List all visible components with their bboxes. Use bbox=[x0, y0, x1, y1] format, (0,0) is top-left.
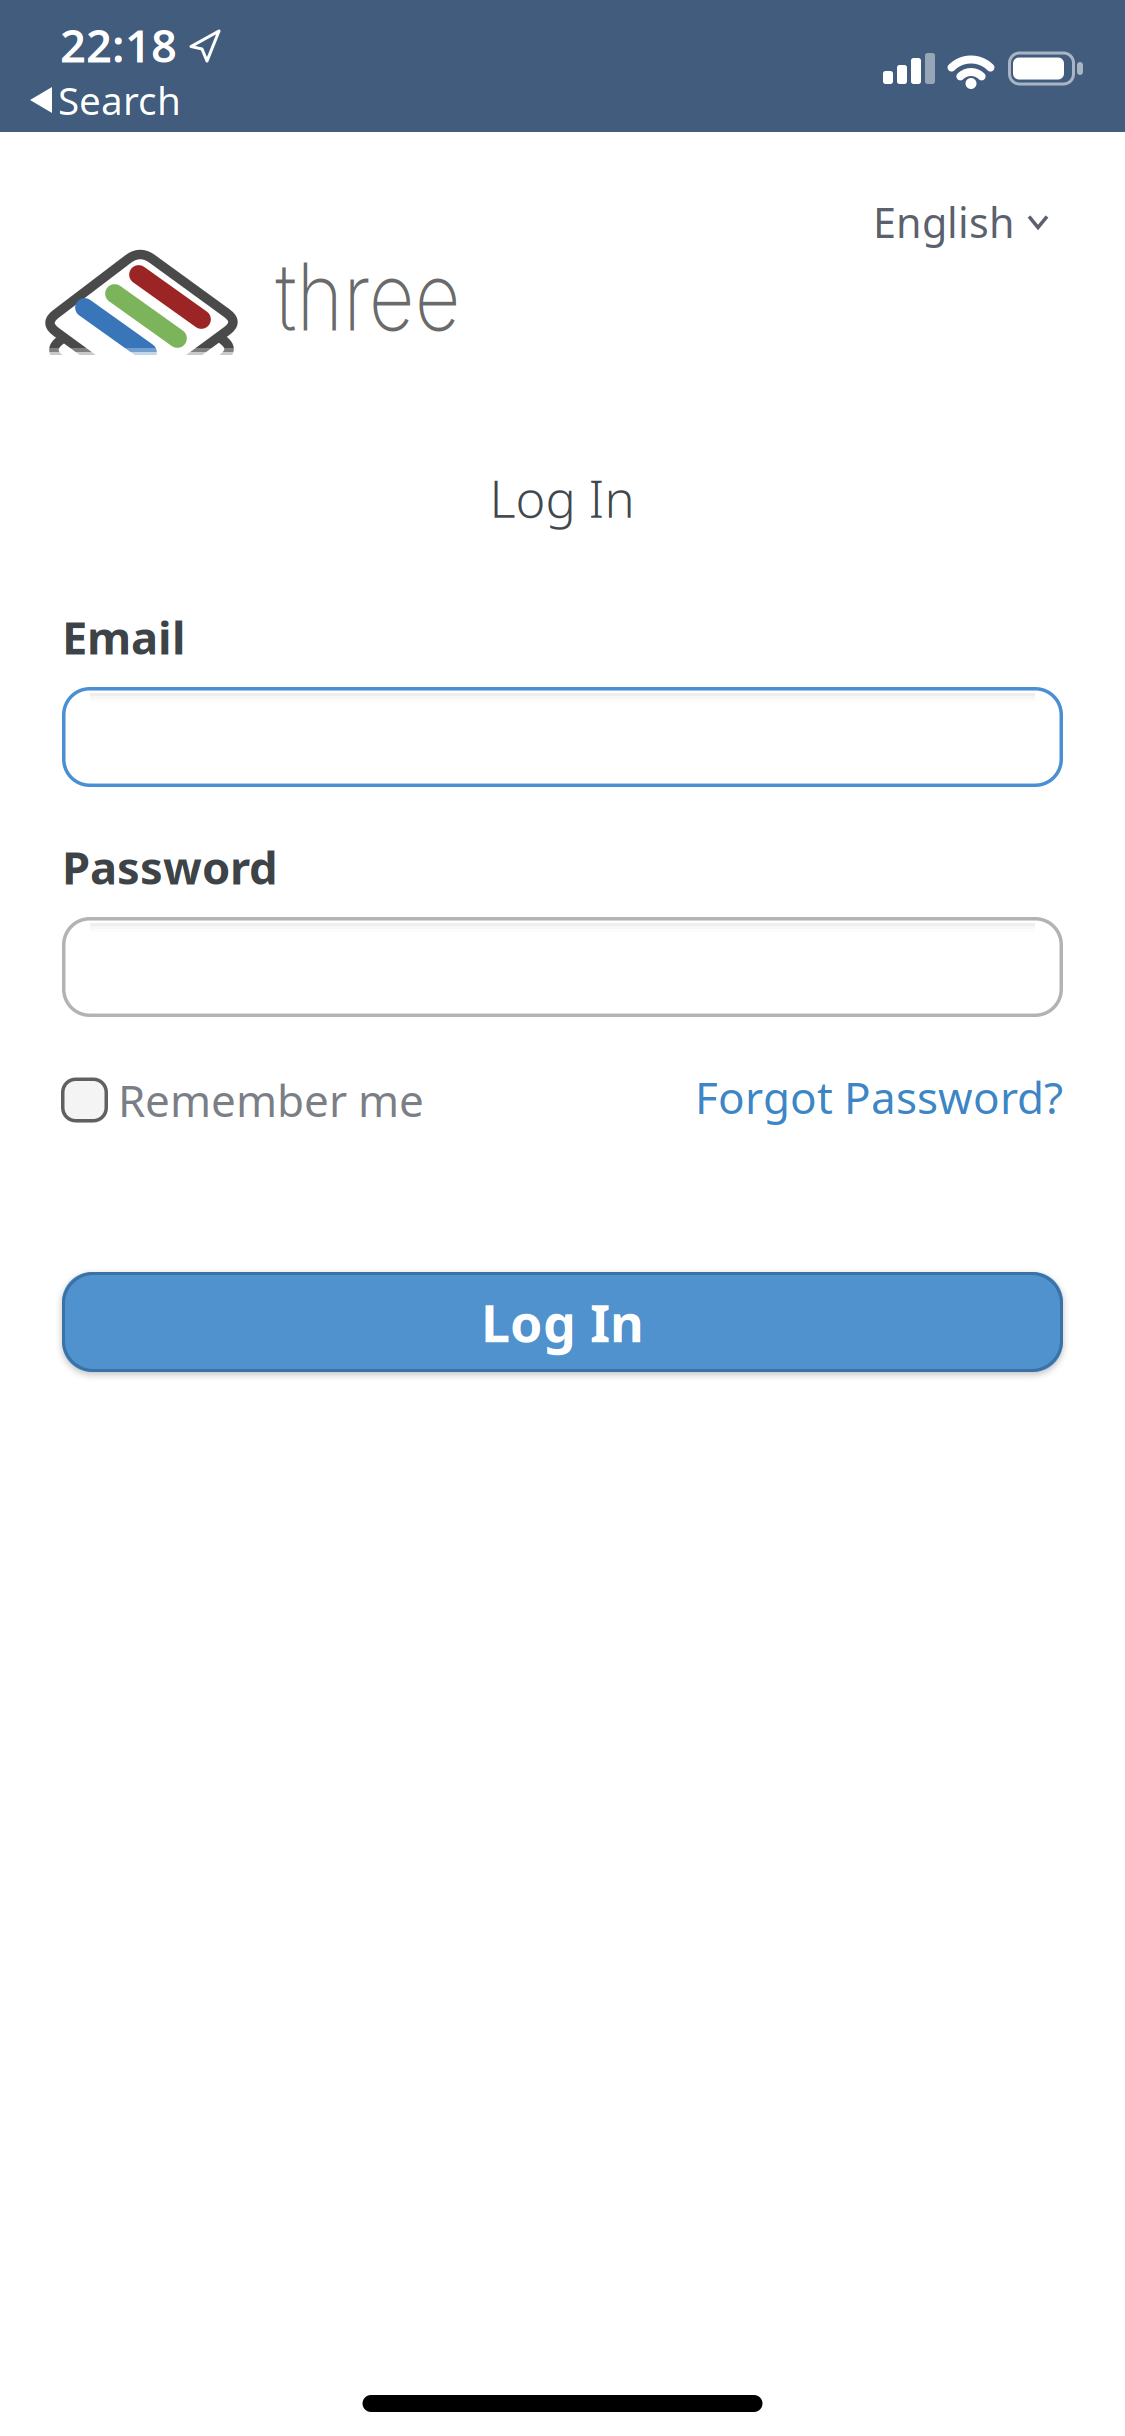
button[interactable]: Email bbox=[62, 687, 1063, 787]
staticText: English bbox=[873, 195, 1015, 249]
button[interactable]: Forgot Password? bbox=[695, 1068, 1063, 1126]
button[interactable]: Password bbox=[62, 917, 1063, 1017]
button[interactable]: Log In bbox=[62, 1272, 1063, 1372]
staticText: Log In bbox=[489, 464, 634, 532]
button[interactable]: Back to Search bbox=[30, 74, 181, 126]
staticText: Forgot Password? bbox=[695, 1068, 1063, 1126]
staticText: 22:18 bbox=[60, 15, 177, 75]
staticText: Email bbox=[62, 607, 186, 667]
staticText: Log In bbox=[481, 1287, 644, 1357]
staticText: Remember me bbox=[118, 1071, 424, 1129]
button[interactable]: Language: English bbox=[873, 195, 1049, 249]
staticText: Search bbox=[58, 74, 181, 126]
button[interactable]: Remember me bbox=[61, 1071, 424, 1129]
staticText: three bbox=[259, 240, 477, 353]
staticText: Password bbox=[62, 837, 278, 897]
